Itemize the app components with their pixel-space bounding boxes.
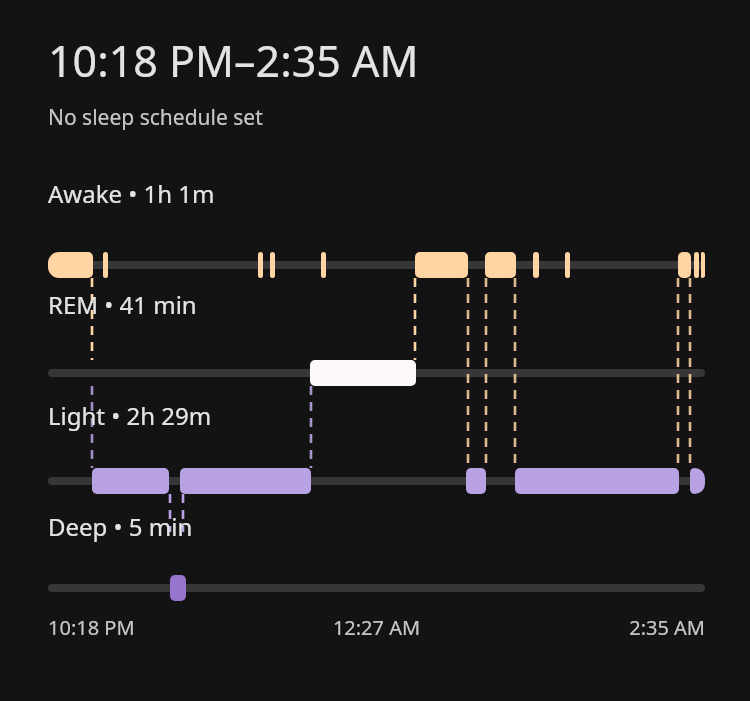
staticText: 10:18 PM xyxy=(48,614,267,641)
button[interactable]: Light • 2h 29m xyxy=(48,399,726,432)
staticText: Light • 2h 29m xyxy=(48,399,212,432)
button[interactable]: Awake • 1h 1m xyxy=(48,177,726,210)
staticText: No sleep schedule set xyxy=(48,103,263,132)
staticText: 12:27 AM xyxy=(267,614,486,641)
staticText: 2:35 AM xyxy=(486,614,705,641)
staticText: Awake • 1h 1m xyxy=(48,177,215,210)
staticText: Deep • 5 min xyxy=(48,510,193,543)
button[interactable]: Deep • 5 min xyxy=(48,510,726,543)
staticText: REM • 41 min xyxy=(48,288,197,321)
button[interactable]: 10:18 PM–2:35 AM xyxy=(48,31,726,90)
staticText: 10:18 PM–2:35 AM xyxy=(48,31,419,90)
button[interactable]: REM • 41 min xyxy=(48,288,726,321)
